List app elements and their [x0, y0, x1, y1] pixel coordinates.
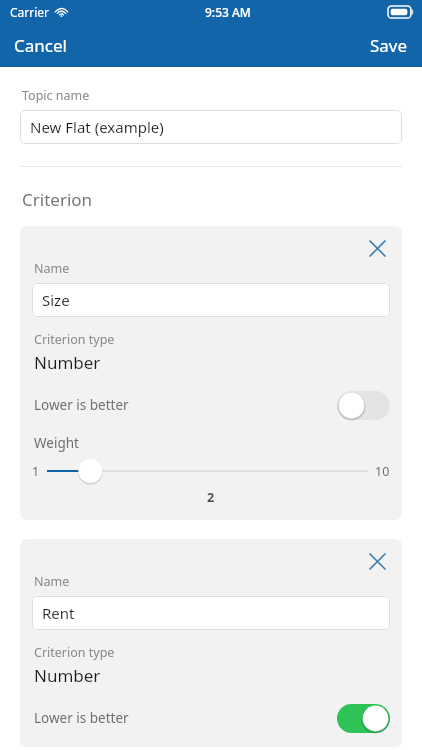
button[interactable]: Lower is better toggle [337, 704, 390, 733]
button[interactable]: Rent [32, 596, 390, 630]
staticText: Criterion type [34, 644, 115, 661]
button[interactable]: Remove criterion [364, 238, 390, 258]
staticText: Lower is better [34, 396, 129, 414]
staticText: Name [34, 573, 70, 590]
staticText: New Flat (example) [30, 117, 164, 137]
staticText: Size [42, 290, 70, 310]
staticText: Number [34, 664, 101, 687]
staticText: Weight [34, 434, 79, 452]
staticText: Carrier [10, 4, 50, 20]
staticText: 1 [32, 463, 40, 480]
button[interactable]: Save [356, 26, 422, 65]
staticText: Criterion [22, 188, 93, 211]
button[interactable]: New Flat (example) [20, 110, 402, 144]
staticText: Lower is better [34, 709, 129, 727]
staticText: Name [34, 260, 70, 277]
staticText: 2 [207, 489, 215, 506]
button[interactable]: Remove criterion [364, 551, 390, 571]
staticText: Save [370, 34, 408, 57]
staticText: Rent [42, 603, 75, 623]
button[interactable]: Size [32, 283, 390, 317]
button[interactable]: Lower is better [32, 390, 390, 420]
staticText: 10 [375, 463, 390, 480]
staticText: Criterion type [34, 331, 115, 348]
button[interactable] [47, 458, 368, 484]
button[interactable]: Lower is better toggle [337, 391, 390, 420]
staticText: Number [34, 351, 101, 374]
button[interactable]: Lower is better [32, 703, 390, 733]
staticText: Topic name [22, 87, 90, 104]
staticText: Cancel [14, 34, 67, 57]
button[interactable]: Cancel [0, 26, 81, 65]
staticText: 9:53 AM [205, 4, 251, 20]
